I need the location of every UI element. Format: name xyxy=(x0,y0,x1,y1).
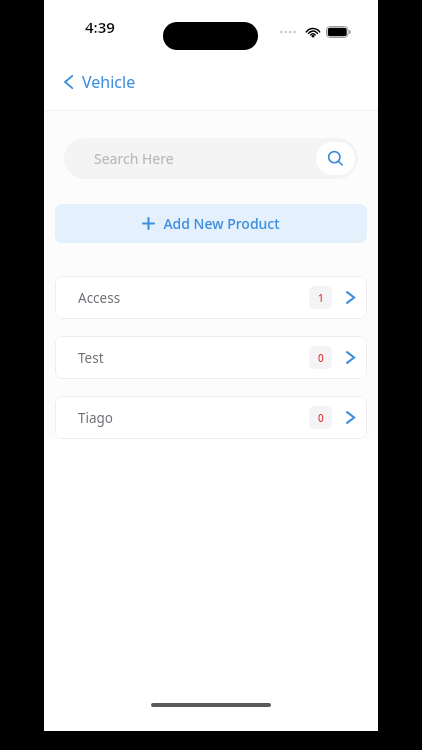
staticText: 4:39 xyxy=(85,17,115,37)
button[interactable]: Access xyxy=(55,276,367,319)
other: Open Test xyxy=(346,350,355,365)
staticText: Add New Product xyxy=(163,214,280,233)
button[interactable]: Tiago xyxy=(55,396,367,439)
other: Open Tiago xyxy=(346,410,355,425)
button[interactable]: Search Here xyxy=(64,138,358,179)
staticText: Search Here xyxy=(94,149,174,168)
button[interactable]: Vehicle xyxy=(58,68,142,96)
staticText: Tiago xyxy=(78,409,114,427)
staticText: Test xyxy=(78,349,104,367)
staticText: 0 xyxy=(318,411,324,425)
staticText: 0 xyxy=(318,351,324,365)
button[interactable]: Add New Product xyxy=(55,204,367,243)
staticText: Access xyxy=(78,289,121,307)
other: Open Access xyxy=(346,290,355,305)
button[interactable]: Search xyxy=(316,142,355,175)
button[interactable]: Test xyxy=(55,336,367,379)
staticText: 1 xyxy=(318,291,324,305)
staticText: Vehicle xyxy=(82,71,136,93)
